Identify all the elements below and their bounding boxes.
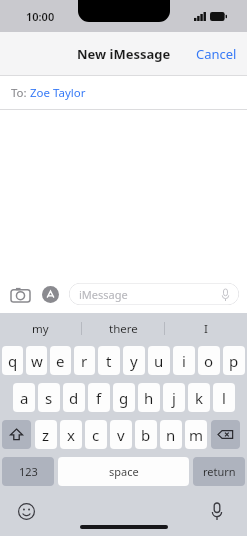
staticText: q (8, 351, 18, 371)
staticText: p (229, 351, 239, 371)
button[interactable]: f (88, 383, 110, 412)
staticText: i (182, 351, 186, 371)
button[interactable]: y (123, 346, 145, 375)
button[interactable]: m (185, 420, 207, 449)
button[interactable]: Apps (38, 282, 62, 306)
button[interactable]: q (2, 346, 23, 375)
button[interactable]: n (160, 420, 182, 449)
staticText: f (96, 388, 102, 408)
button[interactable]: 123 (2, 457, 54, 486)
staticText: s (45, 388, 53, 408)
button[interactable]: g (113, 383, 135, 412)
other: Dictate (219, 288, 232, 301)
button[interactable]: r (74, 346, 95, 375)
button[interactable]: p (223, 346, 245, 375)
staticText: Zoe Taylor (30, 85, 86, 101)
staticText: b (141, 425, 151, 445)
button[interactable]: c (85, 420, 107, 449)
button[interactable]: To: (0, 76, 247, 109)
button[interactable]: I (165, 313, 247, 344)
button[interactable]: k (188, 383, 210, 412)
staticText: g (119, 388, 129, 408)
staticText: Cancel (196, 45, 237, 63)
button[interactable]: d (63, 383, 85, 412)
button[interactable]: z (35, 420, 57, 449)
staticText: z (42, 425, 50, 445)
staticText: New iMessage (77, 45, 171, 63)
button[interactable]: s (38, 383, 60, 412)
staticText: I (204, 321, 208, 337)
staticText: y (130, 351, 138, 371)
staticText: d (69, 388, 79, 408)
staticText: o (204, 351, 214, 371)
button[interactable]: u (148, 346, 170, 375)
button[interactable]: e (50, 346, 71, 375)
button[interactable]: Emoji (14, 499, 38, 523)
staticText: t (106, 351, 112, 371)
staticText: x (67, 425, 75, 445)
staticText: r (81, 351, 88, 371)
button[interactable]: return (193, 457, 245, 486)
staticText: To: (11, 85, 30, 101)
staticText: j (172, 388, 176, 408)
button[interactable]: there (82, 313, 164, 344)
button[interactable]: l (213, 383, 235, 412)
staticText: k (195, 388, 204, 408)
button[interactable]: Shift (2, 420, 31, 449)
button[interactable]: iMessage (69, 283, 239, 305)
staticText: 123 (19, 464, 38, 479)
staticText: n (166, 425, 176, 445)
staticText: u (154, 351, 164, 371)
staticText: e (56, 351, 65, 371)
staticText: l (222, 388, 226, 408)
button[interactable]: space (58, 457, 189, 486)
staticText: iMessage (79, 287, 128, 302)
button[interactable]: Backspace (211, 420, 240, 449)
staticText: w (31, 351, 43, 371)
button[interactable]: my (0, 313, 81, 344)
staticText: h (144, 388, 154, 408)
button[interactable]: b (135, 420, 157, 449)
staticText: a (20, 388, 29, 408)
button[interactable]: Camera (8, 282, 32, 306)
button[interactable]: Dictation (205, 499, 229, 523)
staticText: return (203, 464, 236, 479)
staticText: there (109, 321, 138, 337)
button[interactable]: t (98, 346, 120, 375)
staticText: m (189, 425, 204, 445)
button[interactable]: Cancel (186, 37, 247, 71)
staticText: my (32, 321, 49, 337)
staticText: 10:00 (26, 9, 55, 24)
button[interactable]: j (163, 383, 185, 412)
staticText: c (92, 425, 100, 445)
button[interactable]: v (110, 420, 132, 449)
button[interactable]: a (13, 383, 35, 412)
button[interactable]: i (173, 346, 195, 375)
button[interactable]: w (26, 346, 47, 375)
button[interactable]: x (60, 420, 82, 449)
staticText: v (117, 425, 125, 445)
button[interactable]: h (138, 383, 160, 412)
button[interactable]: o (198, 346, 220, 375)
staticText: space (109, 464, 139, 479)
